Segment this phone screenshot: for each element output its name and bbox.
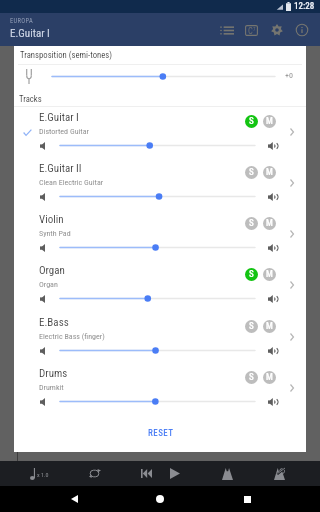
staticText: S bbox=[249, 218, 254, 229]
button[interactable]: Back bbox=[61, 486, 87, 512]
button[interactable] bbox=[60, 344, 255, 357]
button[interactable]: Volume up bbox=[268, 193, 276, 201]
staticText: S bbox=[249, 321, 254, 332]
staticText: Organ bbox=[39, 280, 58, 289]
button[interactable]: S bbox=[245, 320, 258, 333]
button[interactable]: Chords bbox=[239, 16, 264, 44]
button[interactable]: Volume down bbox=[40, 244, 45, 252]
staticText: Transposition (semi-tones) bbox=[20, 50, 113, 60]
staticText: S bbox=[249, 116, 254, 127]
staticText: M bbox=[266, 372, 273, 383]
button[interactable]: Track settings bbox=[282, 275, 302, 295]
button[interactable] bbox=[60, 241, 255, 254]
button[interactable]: Volume up bbox=[268, 398, 276, 406]
button[interactable]: Track settings bbox=[282, 224, 302, 244]
button[interactable]: M bbox=[263, 268, 276, 281]
staticText: x 1.0 bbox=[37, 471, 49, 478]
staticText: Drumkit bbox=[39, 383, 64, 392]
button[interactable]: Track settings bbox=[282, 327, 302, 347]
button[interactable]: Volume up bbox=[268, 142, 276, 150]
staticText: M bbox=[266, 116, 273, 127]
button[interactable]: Violin bbox=[14, 209, 306, 260]
staticText: S bbox=[249, 372, 254, 383]
staticText: RESET bbox=[148, 428, 174, 439]
staticText: M bbox=[266, 218, 273, 229]
staticText: +0 bbox=[285, 71, 293, 80]
button[interactable]: S bbox=[245, 371, 258, 384]
staticText: E.Guitar I bbox=[39, 111, 79, 124]
button[interactable]: Drums bbox=[14, 363, 306, 414]
staticText: Electric Bass (finger) bbox=[39, 332, 105, 341]
staticText: C bbox=[248, 26, 253, 36]
button[interactable]: Volume up bbox=[268, 347, 276, 355]
staticText: Synth Pad bbox=[39, 229, 71, 238]
button[interactable]: Metronome off bbox=[267, 461, 291, 486]
button[interactable] bbox=[60, 139, 255, 152]
button[interactable] bbox=[52, 70, 275, 83]
button[interactable]: Volume up bbox=[268, 295, 276, 303]
button[interactable]: Track list bbox=[214, 16, 239, 44]
staticText: 12:28 bbox=[294, 1, 315, 12]
button[interactable]: M bbox=[263, 115, 276, 128]
staticText: Tracks bbox=[19, 94, 42, 104]
button[interactable] bbox=[60, 395, 255, 408]
staticText: E.Guitar I bbox=[10, 27, 50, 40]
button[interactable]: E.Bass bbox=[14, 312, 306, 363]
staticText: 7 bbox=[253, 26, 256, 32]
button[interactable]: Home bbox=[147, 486, 173, 512]
staticText: Violin bbox=[39, 213, 64, 226]
button[interactable]: Organ bbox=[14, 260, 306, 311]
button[interactable]: Loop bbox=[83, 461, 107, 486]
button[interactable]: Play bbox=[163, 461, 187, 486]
staticText: Organ bbox=[39, 264, 65, 277]
button[interactable]: Volume down bbox=[40, 398, 45, 406]
button[interactable]: RESET bbox=[139, 423, 183, 444]
button[interactable]: Settings bbox=[264, 16, 289, 44]
button[interactable]: Info bbox=[289, 16, 314, 44]
button[interactable]: Tempo bbox=[22, 461, 54, 486]
button[interactable]: Volume down bbox=[40, 347, 45, 355]
button[interactable]: Track settings bbox=[282, 378, 302, 398]
button[interactable]: S bbox=[245, 268, 258, 281]
button[interactable]: M bbox=[263, 371, 276, 384]
staticText: Clean Electric Guitar bbox=[39, 178, 104, 187]
staticText: M bbox=[266, 167, 273, 178]
button[interactable]: S bbox=[245, 217, 258, 230]
button[interactable] bbox=[60, 190, 255, 203]
button[interactable]: Previous bbox=[134, 461, 158, 486]
button[interactable]: S bbox=[245, 115, 258, 128]
button[interactable] bbox=[60, 292, 255, 305]
button[interactable]: Volume up bbox=[268, 244, 276, 252]
button[interactable]: Track settings bbox=[282, 122, 302, 142]
staticText: S bbox=[249, 167, 254, 178]
button[interactable]: M bbox=[263, 166, 276, 179]
button[interactable]: M bbox=[263, 320, 276, 333]
staticText: M bbox=[266, 321, 273, 332]
button[interactable]: E.Guitar I bbox=[14, 107, 306, 158]
staticText: S bbox=[249, 269, 254, 280]
button[interactable]: Track settings bbox=[282, 173, 302, 193]
button[interactable]: M bbox=[263, 217, 276, 230]
staticText: E.Bass bbox=[39, 316, 69, 329]
staticText: E.Guitar II bbox=[39, 162, 82, 175]
button[interactable]: Volume down bbox=[40, 193, 45, 201]
button[interactable]: Metronome bbox=[215, 461, 239, 486]
button[interactable]: E.Guitar II bbox=[14, 158, 306, 209]
button[interactable]: Volume down bbox=[40, 295, 45, 303]
staticText: Drums bbox=[39, 367, 68, 380]
staticText: Distorted Guitar bbox=[39, 127, 89, 136]
staticText: EUROPA bbox=[10, 17, 33, 25]
staticText: M bbox=[266, 269, 273, 280]
button[interactable]: Recent apps bbox=[234, 486, 260, 512]
button[interactable]: S bbox=[245, 166, 258, 179]
button[interactable]: Volume down bbox=[40, 142, 45, 150]
